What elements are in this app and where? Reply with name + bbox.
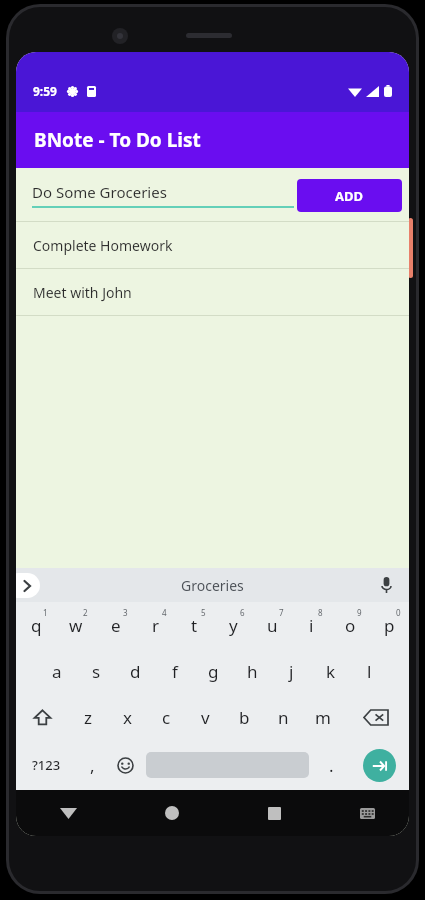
staticText: u xyxy=(267,614,278,637)
button[interactable]: , xyxy=(76,740,109,790)
button[interactable]: Back xyxy=(16,790,120,836)
button[interactable]: Do Some Groceries xyxy=(32,182,294,208)
staticText: , xyxy=(90,754,95,777)
button[interactable]: c xyxy=(147,694,186,740)
button[interactable]: Shift xyxy=(16,694,68,740)
staticText: k xyxy=(326,660,336,683)
staticText: j xyxy=(289,660,294,683)
button[interactable]: Backspace xyxy=(342,694,409,740)
staticText: v xyxy=(201,706,210,729)
staticText: x xyxy=(123,706,132,729)
staticText: BNote - To Do List xyxy=(34,127,201,153)
staticText: r xyxy=(152,614,160,637)
staticText: d xyxy=(130,660,141,683)
button[interactable]: i xyxy=(292,602,331,648)
staticText: g xyxy=(208,660,219,683)
button[interactable]: u xyxy=(253,602,292,648)
staticText: l xyxy=(367,660,372,683)
button[interactable]: a xyxy=(37,648,77,694)
staticText: 7 xyxy=(279,607,284,618)
staticText: m xyxy=(315,706,331,729)
staticText: Complete Homework xyxy=(33,236,173,255)
button[interactable]: v xyxy=(186,694,225,740)
button[interactable]: x xyxy=(108,694,147,740)
button[interactable]: r xyxy=(136,602,175,648)
button[interactable]: z xyxy=(68,694,108,740)
button[interactable]: k xyxy=(311,648,350,694)
button[interactable]: n xyxy=(264,694,303,740)
button[interactable]: Groceries xyxy=(181,576,244,595)
staticText: Meet with John xyxy=(33,283,132,302)
button[interactable]: f xyxy=(155,648,194,694)
staticText: 2 xyxy=(83,607,88,618)
staticText: 6 xyxy=(240,607,245,618)
button[interactable]: ADD xyxy=(297,179,402,212)
button[interactable]: Switch keyboard xyxy=(326,790,409,836)
staticText: c xyxy=(162,706,171,729)
button[interactable]: t xyxy=(175,602,214,648)
button[interactable]: y xyxy=(214,602,253,648)
staticText: 5 xyxy=(201,607,206,618)
button[interactable]: b xyxy=(225,694,264,740)
staticText: 9 xyxy=(357,607,362,618)
staticText: n xyxy=(278,706,289,729)
staticText: 9:59 xyxy=(33,83,57,99)
button[interactable]: w xyxy=(56,602,96,648)
button[interactable]: h xyxy=(233,648,272,694)
staticText: b xyxy=(239,706,250,729)
staticText: 8 xyxy=(318,607,323,618)
button[interactable]: Enter xyxy=(363,749,396,782)
staticText: Do Some Groceries xyxy=(32,182,167,202)
button[interactable]: l xyxy=(350,648,389,694)
button[interactable]: j xyxy=(272,648,311,694)
button[interactable]: Meet with John xyxy=(16,269,409,316)
staticText: 3 xyxy=(123,607,128,618)
button[interactable]: Complete Homework xyxy=(16,222,409,269)
button[interactable]: p xyxy=(370,602,409,648)
staticText: a xyxy=(52,660,62,683)
button[interactable]: . xyxy=(313,740,350,790)
staticText: w xyxy=(69,614,83,637)
staticText: z xyxy=(84,706,92,729)
staticText: o xyxy=(345,614,356,637)
staticText: q xyxy=(31,614,42,637)
staticText: 4 xyxy=(162,607,167,618)
staticText: . xyxy=(329,754,334,777)
staticText: ADD xyxy=(335,187,364,205)
staticText: p xyxy=(384,614,395,637)
button[interactable]: q xyxy=(16,602,56,648)
button[interactable]: Recents xyxy=(223,790,326,836)
staticText: ?123 xyxy=(32,756,61,774)
staticText: s xyxy=(92,660,101,683)
button[interactable]: Expand suggestions xyxy=(16,573,40,598)
button[interactable]: Emoji xyxy=(109,740,142,790)
button[interactable]: e xyxy=(96,602,136,648)
button[interactable]: BNote - To Do List xyxy=(16,112,409,168)
staticText: y xyxy=(229,614,238,637)
button[interactable]: s xyxy=(77,648,116,694)
button[interactable]: Voice input xyxy=(375,574,397,596)
staticText: h xyxy=(247,660,258,683)
button[interactable]: o xyxy=(331,602,370,648)
button[interactable]: m xyxy=(303,694,342,740)
staticText: 0 xyxy=(396,607,401,618)
staticText: e xyxy=(111,614,121,637)
staticText: 1 xyxy=(43,607,48,618)
button[interactable]: g xyxy=(194,648,233,694)
button[interactable]: d xyxy=(116,648,155,694)
staticText: f xyxy=(172,660,178,683)
staticText: t xyxy=(191,614,198,637)
staticText: i xyxy=(309,614,314,637)
button[interactable]: ?123 xyxy=(16,740,76,790)
button[interactable]: Home xyxy=(120,790,223,836)
